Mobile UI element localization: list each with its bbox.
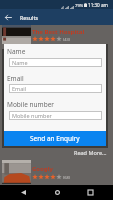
button[interactable]: The Best Hospital	[0, 25, 113, 49]
button[interactable]: Back	[0, 9, 16, 25]
button[interactable]: Send an Enquiry	[4, 131, 106, 146]
staticText: (68)	[63, 175, 70, 180]
staticText: 79%	[75, 3, 84, 9]
staticText: Name	[7, 47, 26, 56]
staticText: Email	[7, 74, 24, 83]
staticText: Mobile number	[12, 112, 52, 119]
button[interactable]: Home	[47, 185, 67, 200]
staticText: (43)	[63, 37, 70, 42]
staticText: Send an Enquiry	[30, 134, 80, 143]
button[interactable]: Read More...	[73, 149, 108, 156]
staticText: The Best Hospital	[32, 28, 85, 36]
staticText: Email	[12, 85, 27, 92]
button[interactable]: Googly	[0, 160, 113, 184]
button[interactable]: Recent apps	[80, 185, 100, 200]
staticText: Results	[20, 14, 38, 21]
staticText: Googly	[32, 165, 53, 173]
staticText: Name	[12, 59, 28, 66]
staticText: Mobile number	[7, 100, 54, 109]
staticText: 11:30 am	[88, 2, 108, 8]
staticText: Read More...	[74, 149, 107, 156]
button[interactable]: Back	[13, 185, 33, 200]
